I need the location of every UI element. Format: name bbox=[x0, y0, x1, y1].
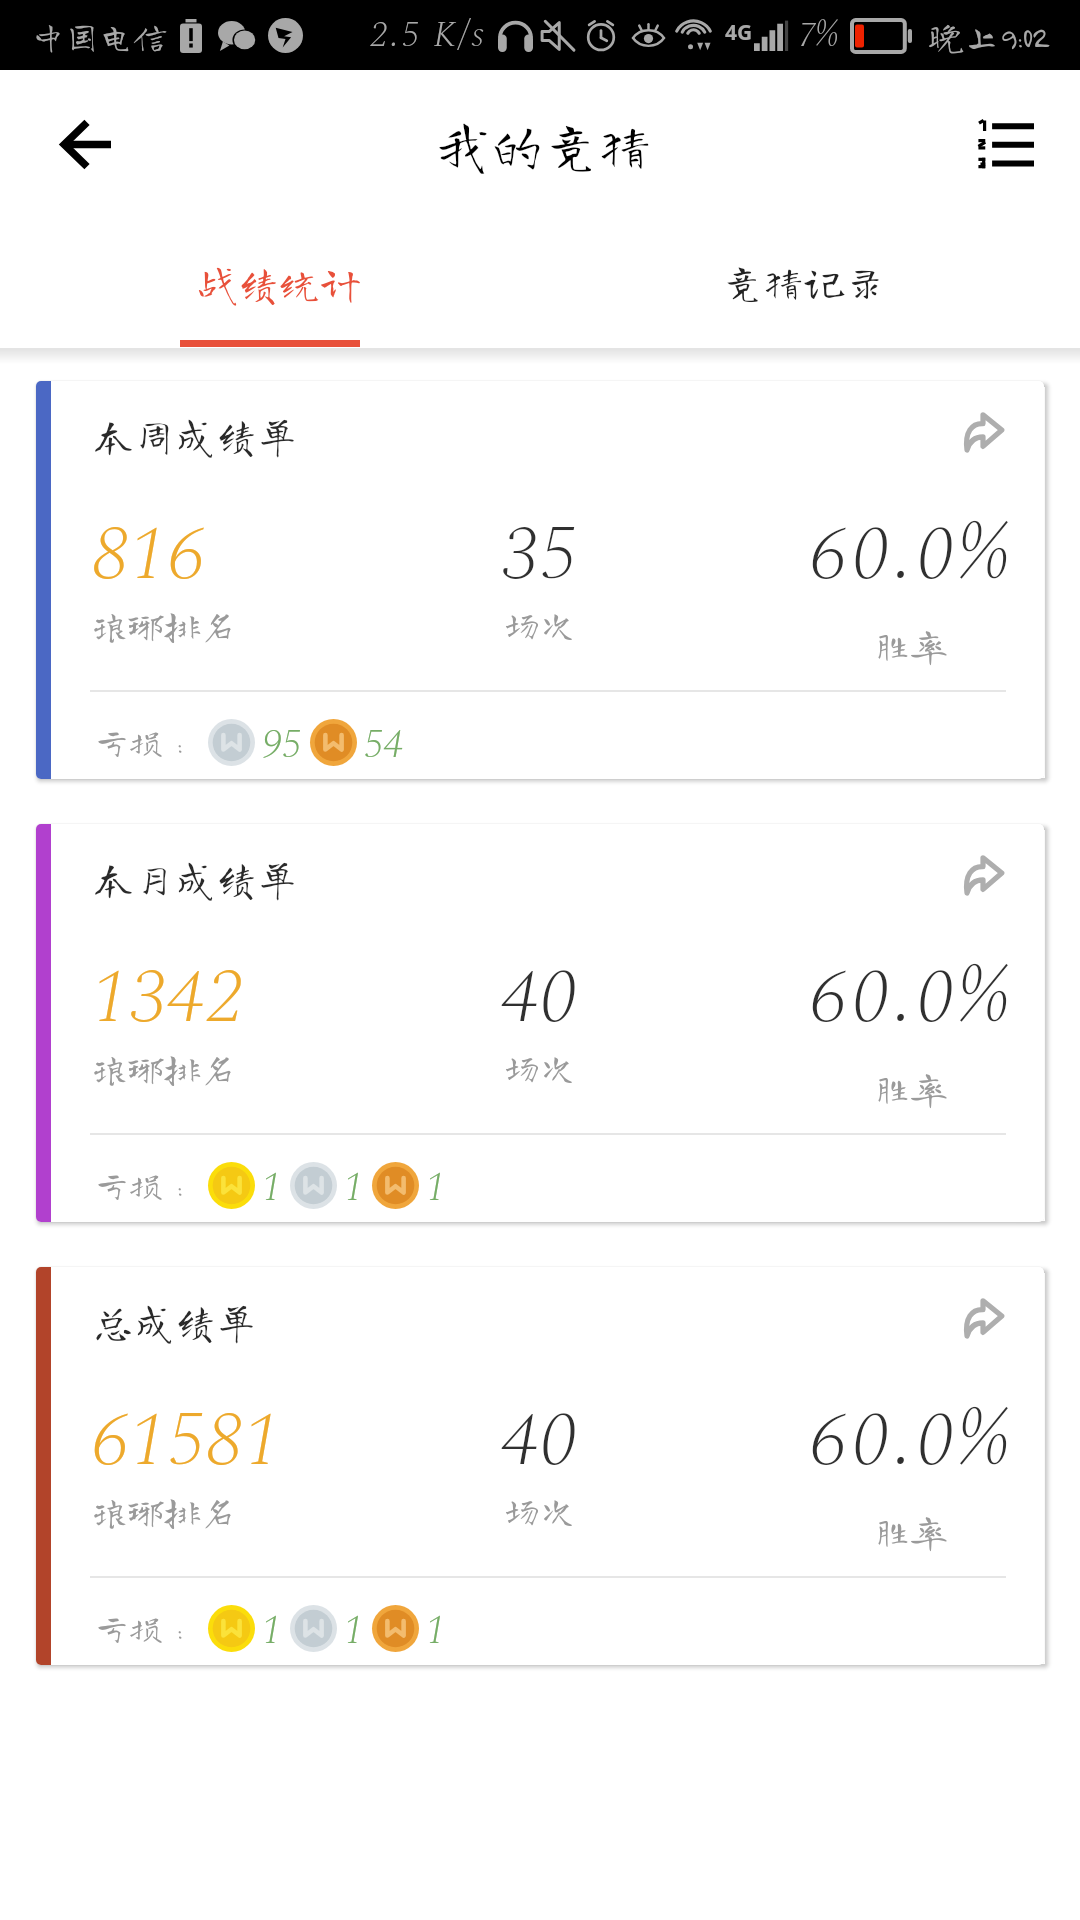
staticText: 亏损： bbox=[95, 725, 197, 759]
staticText: 琅琊排名 bbox=[92, 607, 237, 643]
button[interactable]: 本周成绩单 bbox=[36, 381, 1044, 779]
staticText: 晚上9:02 bbox=[928, 18, 1049, 54]
staticText: 2.5 K/s bbox=[370, 8, 487, 63]
staticText: 胜率 bbox=[875, 1070, 948, 1106]
staticText: 1 bbox=[344, 1601, 364, 1655]
staticText: 中国电信 bbox=[31, 19, 167, 53]
staticText: 场次 bbox=[504, 606, 577, 642]
staticText: 1 bbox=[344, 1158, 364, 1212]
staticText: 35 bbox=[502, 498, 578, 614]
staticText: 胜率 bbox=[875, 1513, 948, 1549]
staticText: 40 bbox=[502, 1384, 578, 1500]
staticText: 95 bbox=[262, 715, 302, 769]
staticText: 54 bbox=[364, 715, 404, 769]
button[interactable]: 战绩统计 bbox=[0, 225, 540, 348]
staticText: 60.0% bbox=[810, 941, 1013, 1057]
staticText: 我的竞猜 bbox=[436, 117, 652, 171]
staticText: 琅琊排名 bbox=[92, 1493, 237, 1529]
staticText: 60.0% bbox=[810, 1384, 1013, 1500]
staticText: 总成绩单 bbox=[93, 1301, 257, 1342]
staticText: 亏损： bbox=[95, 1611, 197, 1645]
staticText: 本月成绩单 bbox=[93, 858, 298, 899]
staticText: 战绩统计 bbox=[197, 263, 361, 304]
staticText: 816 bbox=[92, 498, 206, 614]
staticText: 1 bbox=[426, 1601, 446, 1655]
staticText: 1 bbox=[262, 1158, 282, 1212]
button[interactable]: Back bbox=[39, 96, 135, 192]
staticText: 竞猜记录 bbox=[722, 261, 886, 302]
staticText: 琅琊排名 bbox=[92, 1050, 237, 1086]
button[interactable]: 竞猜记录 bbox=[540, 225, 1080, 348]
button[interactable]: Share bbox=[953, 845, 1013, 905]
staticText: 1 bbox=[426, 1158, 446, 1212]
staticText: 4G bbox=[725, 18, 753, 47]
button[interactable]: 总成绩单 bbox=[36, 1267, 1044, 1665]
staticText: 61581 bbox=[92, 1384, 282, 1500]
staticText: 场次 bbox=[504, 1492, 577, 1528]
staticText: 场次 bbox=[504, 1049, 577, 1085]
staticText: 60.0% bbox=[810, 498, 1013, 614]
button[interactable]: Share bbox=[953, 1288, 1013, 1348]
button[interactable]: Share bbox=[953, 402, 1013, 462]
staticText: 7% bbox=[799, 10, 839, 62]
button[interactable]: Records list bbox=[957, 96, 1053, 192]
staticText: 亏损： bbox=[95, 1168, 197, 1202]
staticText: 胜率 bbox=[875, 627, 948, 663]
button[interactable]: 本月成绩单 bbox=[36, 824, 1044, 1222]
staticText: 1 bbox=[262, 1601, 282, 1655]
staticText: 本周成绩单 bbox=[93, 415, 298, 456]
staticText: 40 bbox=[502, 941, 578, 1057]
staticText: 1342 bbox=[92, 941, 244, 1057]
